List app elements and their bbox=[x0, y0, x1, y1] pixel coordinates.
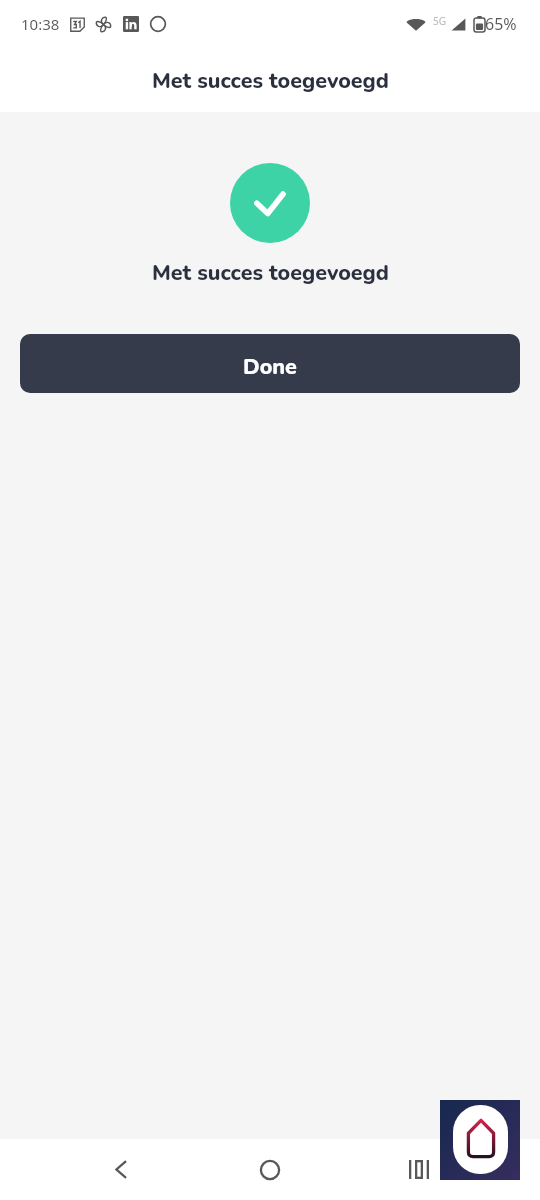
staticText: 5G bbox=[433, 14, 446, 28]
button[interactable]: Home bbox=[195, 1139, 344, 1200]
button[interactable]: Recents bbox=[344, 1139, 493, 1200]
staticText: Met succes toegevoegd bbox=[152, 66, 389, 95]
button[interactable]: Back bbox=[47, 1139, 195, 1200]
button[interactable]: Done bbox=[20, 334, 520, 393]
button[interactable]: App shortcut bbox=[440, 1100, 520, 1180]
staticText: 10:38 bbox=[21, 14, 60, 34]
staticText: Met succes toegevoegd bbox=[152, 258, 389, 287]
staticText: 65% bbox=[485, 13, 517, 35]
staticText: Done bbox=[243, 352, 297, 381]
